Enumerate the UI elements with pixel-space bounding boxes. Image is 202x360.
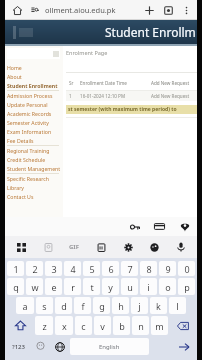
button[interactable]: Shift bbox=[6, 315, 34, 336]
button[interactable]: Fee Details bbox=[7, 136, 63, 145]
button[interactable]: Stickers bbox=[38, 237, 58, 257]
button[interactable]: Update Personal Information bbox=[7, 100, 63, 109]
button[interactable]: c bbox=[75, 316, 92, 335]
button[interactable]: 1 bbox=[66, 91, 197, 101]
button[interactable]: Site information bbox=[29, 4, 41, 16]
staticText: x bbox=[62, 320, 67, 332]
button[interactable]: w bbox=[26, 278, 43, 295]
button[interactable]: j bbox=[131, 297, 148, 314]
button[interactable]: Change language bbox=[50, 336, 69, 357]
button[interactable]: 9 bbox=[159, 261, 176, 276]
button[interactable]: 8 bbox=[140, 261, 157, 276]
staticText: z bbox=[42, 320, 47, 332]
button[interactable]: Specific Research bbox=[7, 174, 63, 183]
button[interactable]: Admission Process bbox=[7, 91, 63, 100]
button[interactable]: st semester (with maximum time period) t… bbox=[66, 105, 197, 114]
button[interactable]: Home bbox=[9, 2, 25, 18]
button[interactable]: English bbox=[70, 338, 149, 355]
button[interactable]: g bbox=[93, 297, 110, 314]
staticText: ollment.aiou.edu.pk bbox=[45, 5, 141, 15]
button[interactable]: q bbox=[7, 278, 24, 295]
staticText: Sr bbox=[69, 80, 80, 86]
button[interactable] bbox=[7, 48, 60, 59]
button[interactable]: Sr bbox=[66, 78, 197, 88]
button[interactable]: Student Management bbox=[7, 164, 63, 173]
button[interactable]: Home bbox=[7, 63, 63, 72]
button[interactable]: x bbox=[55, 316, 73, 335]
button[interactable]: e bbox=[45, 278, 62, 295]
button[interactable]: Contact Us bbox=[7, 192, 63, 201]
button[interactable]: Password bbox=[127, 219, 142, 234]
button[interactable]: s bbox=[36, 297, 53, 314]
button[interactable]: More options bbox=[179, 3, 193, 17]
button[interactable]: New tab bbox=[141, 2, 157, 18]
button[interactable]: m bbox=[151, 316, 168, 335]
button[interactable]: Exam Information bbox=[7, 127, 63, 136]
button[interactable]: Backspace bbox=[169, 315, 196, 336]
button[interactable]: GIF bbox=[64, 237, 84, 257]
button[interactable]: Library bbox=[7, 183, 63, 192]
staticText: r bbox=[71, 281, 75, 293]
button[interactable]: Tabs bbox=[160, 2, 176, 18]
button[interactable]: Emoji bbox=[31, 336, 50, 357]
button[interactable]: Voice input bbox=[171, 237, 191, 257]
staticText: j bbox=[138, 300, 141, 312]
button[interactable]: Payment card bbox=[152, 219, 167, 234]
staticText: About bbox=[7, 73, 22, 80]
staticText: q bbox=[13, 281, 19, 293]
button[interactable]: Settings bbox=[118, 237, 138, 257]
button[interactable]: Clipboard bbox=[91, 237, 111, 257]
button[interactable]: p bbox=[178, 278, 195, 295]
button[interactable]: l bbox=[169, 297, 186, 314]
button[interactable]: h bbox=[112, 297, 129, 314]
button[interactable]: b bbox=[113, 316, 130, 335]
button[interactable]: 1 bbox=[7, 261, 24, 276]
button[interactable]: 3 bbox=[45, 261, 62, 276]
button[interactable]: k bbox=[150, 297, 167, 314]
button[interactable]: y bbox=[102, 278, 119, 295]
button[interactable]: u bbox=[121, 278, 138, 295]
button[interactable]: Credit Schedule bbox=[7, 155, 63, 164]
staticText: Add New Request bbox=[151, 93, 197, 99]
button[interactable]: 4 bbox=[64, 261, 81, 276]
button[interactable]: f bbox=[74, 297, 91, 314]
button[interactable]: z bbox=[35, 316, 53, 335]
button[interactable]: 6 bbox=[102, 261, 119, 276]
staticText: y bbox=[108, 281, 113, 293]
staticText: a bbox=[22, 300, 28, 312]
button[interactable]: 0 bbox=[178, 261, 195, 276]
button[interactable]: Apps bbox=[11, 237, 31, 257]
button[interactable]: t bbox=[83, 278, 100, 295]
staticText: Add New Request bbox=[151, 80, 197, 86]
button[interactable]: d bbox=[55, 297, 72, 314]
button[interactable]: Semester Activity bbox=[7, 118, 63, 127]
button[interactable]: Address bbox=[177, 219, 192, 234]
staticText: u bbox=[127, 281, 133, 293]
button[interactable]: About bbox=[7, 72, 63, 81]
button[interactable]: r bbox=[64, 278, 81, 295]
button[interactable]: 5 bbox=[83, 261, 100, 276]
button[interactable]: Academic Records bbox=[7, 109, 63, 118]
button[interactable]: Student Enrollment bbox=[7, 81, 63, 90]
staticText: 6 bbox=[108, 263, 114, 275]
button[interactable]: a bbox=[16, 297, 34, 314]
button[interactable]: n bbox=[132, 316, 149, 335]
staticText: Contact Us bbox=[7, 193, 34, 200]
staticText: 1 bbox=[13, 263, 19, 275]
staticText: 1 bbox=[69, 93, 80, 99]
staticText: 7 bbox=[127, 263, 133, 275]
button[interactable]: 2 bbox=[26, 261, 43, 276]
button[interactable]: ?123 bbox=[6, 336, 31, 357]
button[interactable]: v bbox=[94, 316, 111, 335]
staticText: f bbox=[81, 300, 85, 312]
button[interactable]: Enter bbox=[171, 336, 196, 357]
staticText: m bbox=[155, 320, 164, 332]
button[interactable]: 7 bbox=[121, 261, 138, 276]
button[interactable]: o bbox=[159, 278, 176, 295]
button[interactable]: Regional Training bbox=[7, 146, 63, 155]
staticText: Regional Training bbox=[7, 147, 50, 154]
button[interactable]: Themes bbox=[144, 237, 164, 257]
button[interactable]: i bbox=[140, 278, 157, 295]
staticText: Home bbox=[7, 64, 22, 71]
staticText: ?123 bbox=[12, 343, 25, 351]
